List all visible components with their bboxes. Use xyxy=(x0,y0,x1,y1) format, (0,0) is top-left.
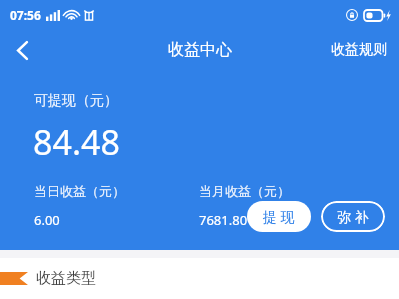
staticText: 收益规则 xyxy=(331,41,387,59)
staticText: 当日收益（元） xyxy=(34,183,125,199)
staticText: 7681.80 xyxy=(199,211,248,229)
button[interactable]: 提 现 xyxy=(247,201,311,232)
staticText: 收益中心 xyxy=(168,40,232,60)
staticText: 84.48 xyxy=(33,119,120,165)
staticText: 6.00 xyxy=(34,211,60,229)
button[interactable]: 弥 补 xyxy=(321,201,385,232)
button[interactable]: 收益规则 xyxy=(319,33,399,67)
staticText: 07:56 xyxy=(10,7,41,23)
staticText: 可提现（元） xyxy=(34,92,118,110)
staticText: 弥 补 xyxy=(337,207,369,226)
staticText: 收益类型 xyxy=(36,269,96,288)
staticText: 当月收益（元） xyxy=(199,183,290,199)
button[interactable]: Back xyxy=(0,30,44,70)
staticText: 提 现 xyxy=(263,207,295,226)
